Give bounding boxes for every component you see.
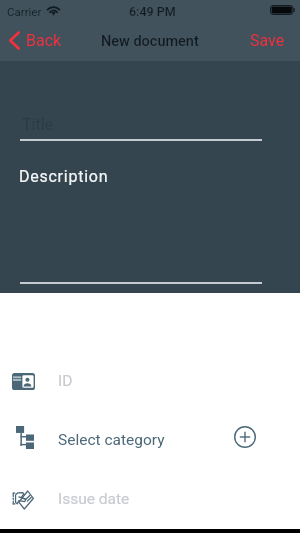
button[interactable]: Save — [236, 29, 300, 52]
button[interactable]: Select category — [0, 410, 300, 469]
button[interactable]: Add category — [234, 426, 256, 448]
staticText: Save — [250, 31, 285, 50]
staticText: New document — [101, 33, 199, 50]
staticText: Title — [22, 115, 54, 134]
staticText: Back — [26, 31, 62, 50]
staticText: Description — [19, 167, 109, 186]
button[interactable]: Issue date — [0, 469, 300, 528]
button[interactable]: ID — [0, 351, 300, 410]
staticText: Issue date — [58, 490, 130, 508]
staticText: Select category — [58, 431, 165, 449]
staticText: 6:49 PM — [129, 4, 176, 19]
staticText: Carrier — [7, 5, 42, 18]
button[interactable]: Back — [0, 29, 70, 52]
staticText: ID — [58, 372, 73, 390]
